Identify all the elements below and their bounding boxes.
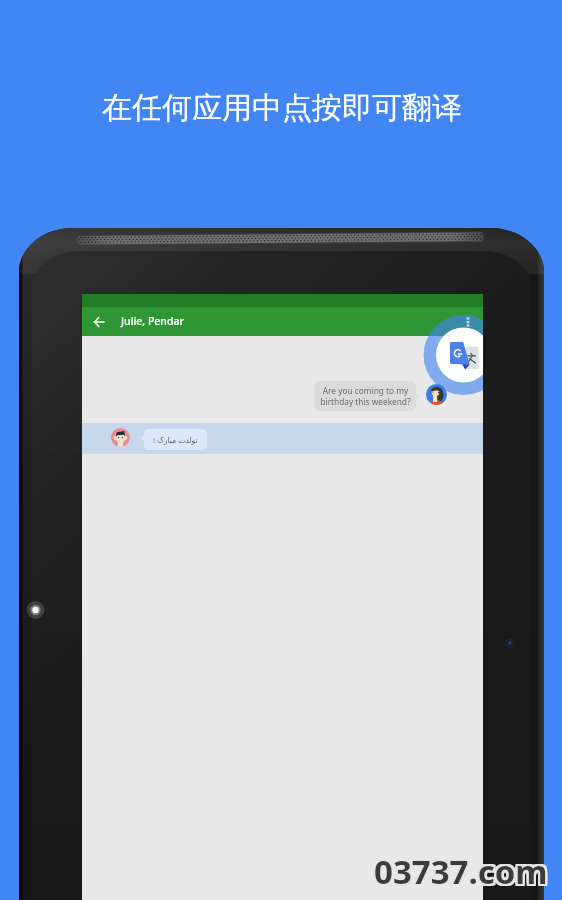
button[interactable]: Are you coming to my birthday this weeke… — [314, 381, 416, 411]
staticText: 03737.com — [372, 849, 546, 894]
staticText: 在任何应用中点按即可翻译 — [102, 89, 462, 127]
staticText: Julie, Pendar — [121, 314, 184, 328]
staticText: 03737.com — [374, 851, 548, 896]
staticText: Are you coming to my birthday this weeke… — [320, 385, 411, 407]
staticText: 03737.com — [374, 849, 548, 894]
staticText: 03737.com — [376, 851, 550, 896]
staticText: 03737.com — [376, 847, 550, 892]
staticText: ! تولدت مبارک — [153, 435, 198, 445]
staticText: 03737.com — [372, 851, 546, 896]
staticText: 03737.com — [372, 847, 546, 892]
button[interactable]: Tap to translate — [82, 294, 483, 900]
staticText: 03737.com — [374, 847, 548, 892]
button[interactable]: Back — [82, 307, 115, 336]
staticText: 03737.com — [376, 849, 550, 894]
